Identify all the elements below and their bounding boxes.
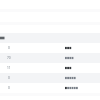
button[interactable]: 11	[0, 63, 100, 73]
staticText: 0	[8, 76, 10, 80]
button[interactable]: 70	[0, 53, 100, 63]
button[interactable]: 0	[0, 83, 100, 93]
button[interactable]: 0	[0, 73, 100, 83]
button[interactable]: 0	[0, 43, 100, 53]
staticText: 0	[8, 46, 10, 50]
staticText: 11	[7, 66, 11, 70]
staticText: 70	[7, 56, 11, 60]
staticText: 0	[8, 86, 10, 90]
